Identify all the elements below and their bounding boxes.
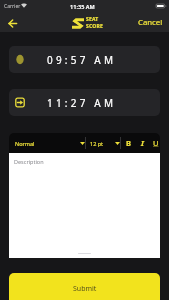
staticText: SEAT <box>86 16 99 23</box>
staticText: Description <box>14 158 44 165</box>
staticText: 09:57 AM <box>47 53 117 67</box>
staticText: B <box>126 138 131 148</box>
staticText: 11:35 AM <box>70 3 95 11</box>
staticText: 12 pt <box>90 140 104 147</box>
staticText: SCORE <box>86 23 103 30</box>
button[interactable]: 12 pt <box>88 136 122 151</box>
staticText: Cancel <box>138 17 163 28</box>
staticText: U <box>153 138 159 148</box>
staticText: Carrier <box>4 3 21 10</box>
button[interactable]: 09:57 AM <box>9 46 160 73</box>
button[interactable]: Cancel <box>132 14 169 31</box>
staticText: I <box>141 138 144 148</box>
button[interactable]: Underline <box>150 136 160 150</box>
button[interactable]: Bold <box>123 136 134 150</box>
button[interactable]: Italic <box>137 136 148 150</box>
button[interactable]: Description <box>9 153 160 258</box>
staticText: Normal <box>15 140 35 147</box>
button[interactable]: Normal <box>12 136 88 151</box>
button[interactable]: Submit <box>9 273 160 300</box>
staticText: 11:27 AM <box>47 96 117 110</box>
button[interactable]: 11:27 AM <box>9 89 160 116</box>
button[interactable]: Back <box>4 15 20 31</box>
staticText: Submit <box>73 284 97 294</box>
